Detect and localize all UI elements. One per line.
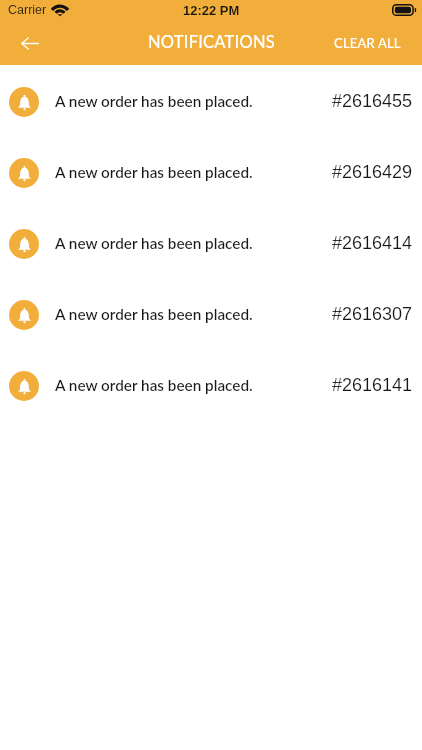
staticText: A new order has been placed.	[55, 163, 253, 181]
button[interactable]: A new order has been placed.	[0, 66, 422, 137]
button[interactable]: A new order has been placed.	[0, 137, 422, 208]
staticText: #2616429	[332, 162, 413, 182]
staticText: Carrier	[8, 3, 47, 17]
staticText: #2616414	[332, 233, 413, 253]
staticText: NOTIFICATIONS	[148, 32, 275, 52]
button[interactable]: CLEAR ALL	[320, 25, 422, 61]
staticText: #2616455	[332, 91, 413, 111]
staticText: A new order has been placed.	[55, 92, 253, 110]
button[interactable]: Back	[9, 22, 51, 64]
staticText: 12:22 PM	[183, 3, 240, 18]
button[interactable]: A new order has been placed.	[0, 208, 422, 279]
button[interactable]: A new order has been placed.	[0, 279, 422, 350]
staticText: CLEAR ALL	[334, 35, 401, 51]
staticText: #2616141	[332, 375, 413, 395]
staticText: A new order has been placed.	[55, 376, 253, 394]
button[interactable]: A new order has been placed.	[0, 350, 422, 421]
staticText: A new order has been placed.	[55, 234, 253, 252]
staticText: #2616307	[332, 304, 413, 324]
staticText: A new order has been placed.	[55, 305, 253, 323]
